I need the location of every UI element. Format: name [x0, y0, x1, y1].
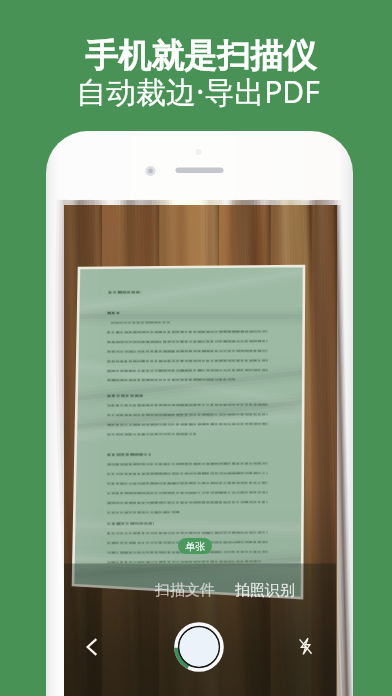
button[interactable]: 扫描文件	[151, 578, 219, 603]
button[interactable]: Flash off	[290, 631, 320, 661]
button[interactable]: 拍照识别	[231, 578, 299, 603]
staticText: 扫描文件	[155, 581, 215, 600]
staticText: 手机就是扫描仪	[85, 35, 316, 77]
staticText: 单张	[185, 540, 205, 553]
button[interactable]: Back	[76, 631, 108, 663]
staticText: 自动裁边·导出PDF	[76, 71, 320, 112]
button[interactable]: 单张	[178, 538, 212, 554]
button[interactable]: Shutter	[170, 618, 228, 676]
staticText: 拍照识别	[235, 581, 295, 600]
